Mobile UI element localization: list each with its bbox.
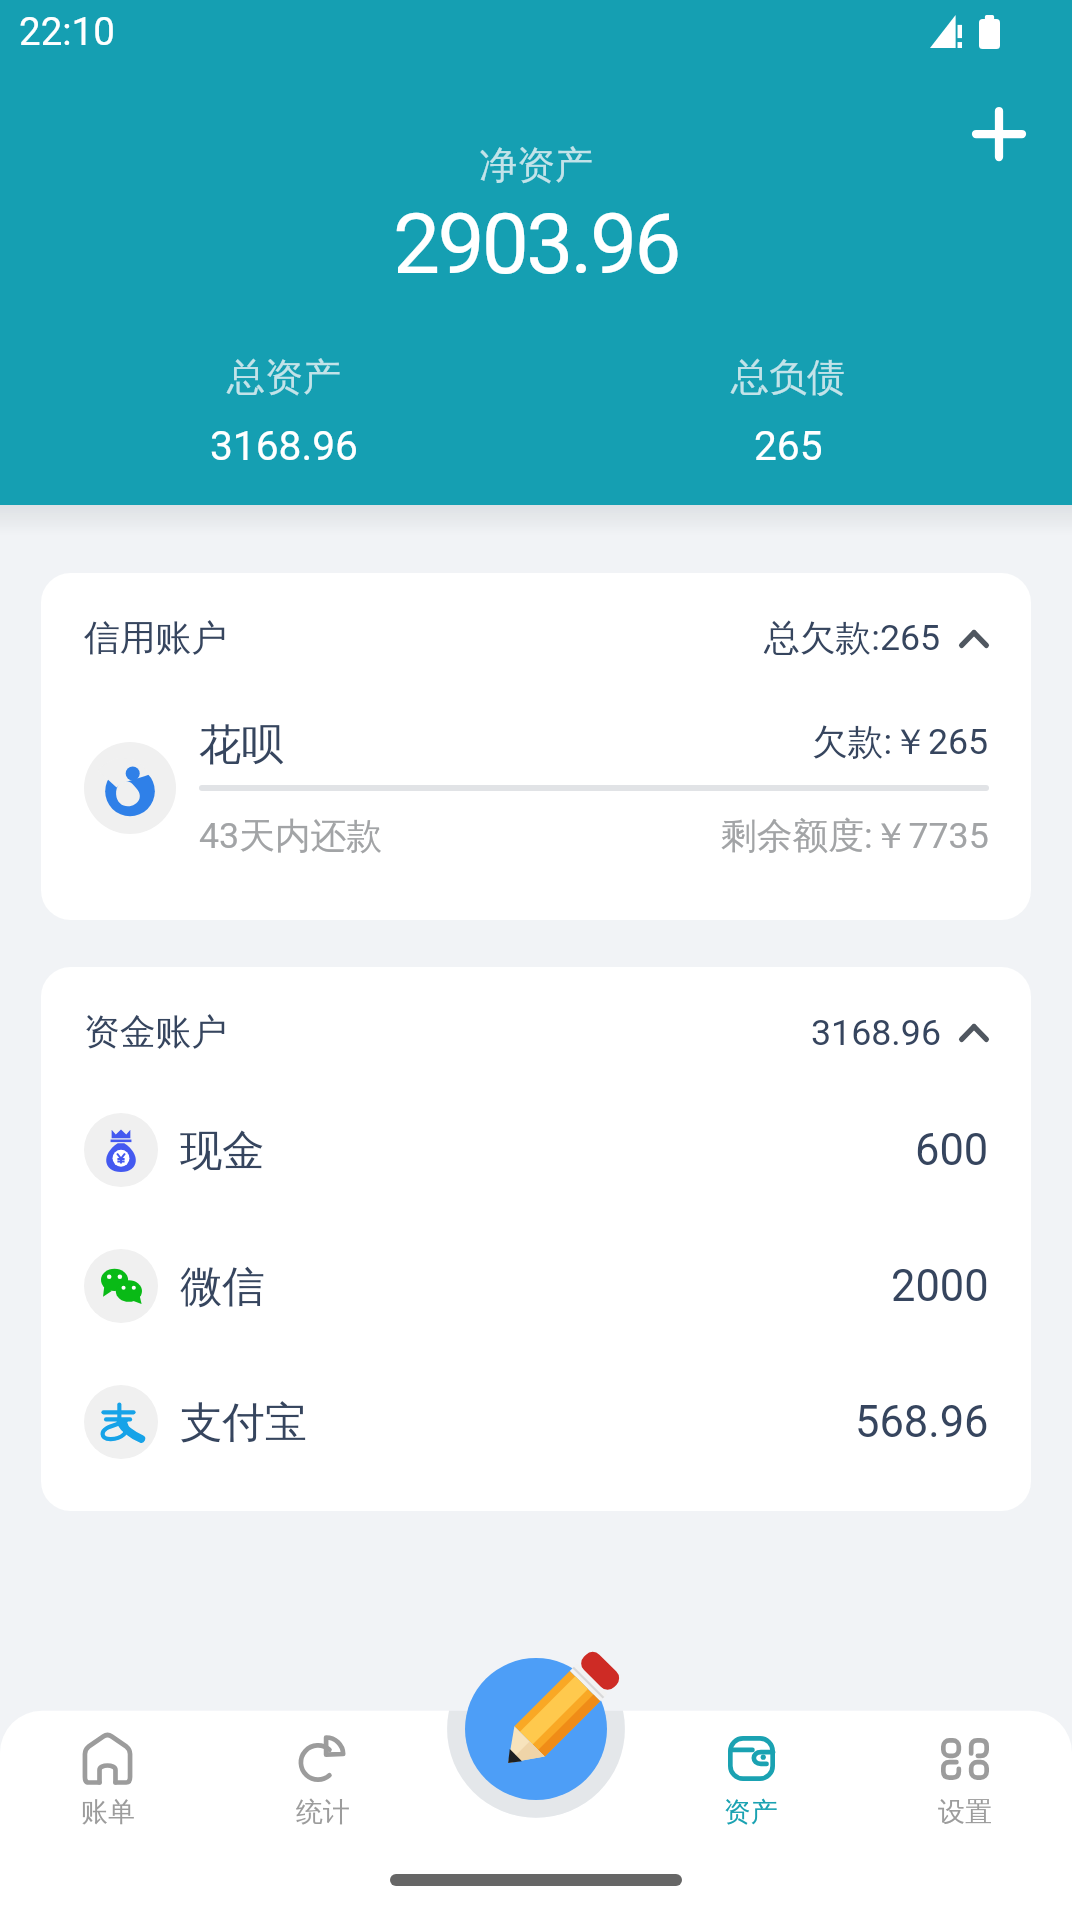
button[interactable]: 资金账户 — [41, 967, 1031, 1082]
button[interactable]: 统计 — [215, 1733, 430, 1827]
staticText: 微信 — [180, 1260, 265, 1313]
staticText: 资金账户 — [84, 1010, 227, 1055]
staticText: 43天内还款 — [199, 814, 383, 859]
staticText: 账单 — [81, 1795, 135, 1827]
staticText: 信用账户 — [84, 616, 227, 661]
button[interactable]: 资产 — [644, 1733, 858, 1827]
staticText: 现金 — [180, 1124, 265, 1177]
staticText: 568.96 — [855, 1397, 989, 1448]
staticText: 欠款:￥265 — [812, 720, 989, 765]
button[interactable]: 账单 — [0, 1733, 215, 1827]
button[interactable]: 现金 — [41, 1082, 1031, 1218]
staticText: 600 — [915, 1125, 989, 1176]
button[interactable]: 微信 — [41, 1218, 1031, 1354]
staticText: 统计 — [296, 1795, 350, 1827]
staticText: 总负债 — [731, 353, 845, 401]
staticText: 2000 — [891, 1261, 989, 1312]
button[interactable]: 花呗 — [41, 688, 1031, 888]
staticText: 设置 — [938, 1795, 992, 1827]
staticText: 净资产 — [479, 141, 593, 189]
staticText: 3168.96 — [811, 1012, 941, 1054]
staticText: 22:10 — [19, 9, 115, 54]
staticText: 支付宝 — [180, 1396, 308, 1449]
staticText: 剩余额度:￥7735 — [721, 814, 989, 859]
staticText: 2903.96 — [393, 195, 679, 293]
staticText: 总欠款:265 — [764, 616, 941, 661]
button[interactable]: Add account — [942, 77, 1055, 190]
button[interactable]: 设置 — [858, 1733, 1072, 1827]
button[interactable]: Add record — [465, 1658, 607, 1800]
button[interactable]: 支付宝 — [41, 1354, 1031, 1490]
staticText: 265 — [754, 422, 823, 470]
staticText: 总资产 — [227, 353, 341, 401]
button[interactable]: 信用账户 — [41, 573, 1031, 688]
staticText: 花呗 — [199, 718, 284, 771]
staticText: 3168.96 — [210, 422, 358, 470]
staticText: 资产 — [724, 1795, 778, 1827]
